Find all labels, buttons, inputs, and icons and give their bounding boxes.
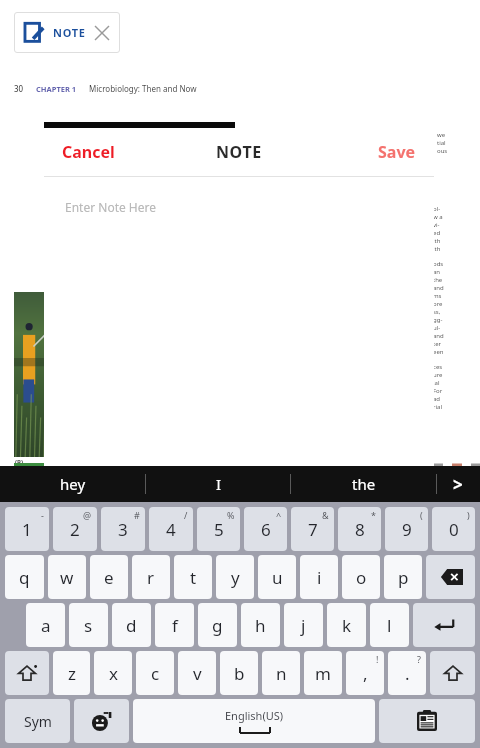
- staticText: -: [41, 509, 44, 521]
- button[interactable]: Clipboard: [379, 699, 475, 743]
- button[interactable]: English(US): [133, 699, 375, 743]
- staticText: w a: [433, 213, 443, 221]
- button[interactable]: Shift: [430, 651, 475, 695]
- button[interactable]: p: [384, 555, 422, 599]
- staticText: Enter Note Here: [65, 199, 157, 215]
- staticText: p: [398, 566, 409, 589]
- button[interactable]: Edit note: [23, 22, 45, 44]
- button[interactable]: z: [53, 651, 90, 695]
- button[interactable]: u: [258, 555, 296, 599]
- button[interactable]: h: [241, 603, 280, 647]
- button[interactable]: Save: [370, 135, 424, 169]
- staticText: CHAPTER 1: [36, 84, 77, 94]
- staticText: and: [433, 284, 444, 292]
- staticText: 3: [118, 518, 128, 541]
- staticText: 0: [449, 518, 459, 541]
- button[interactable]: j: [284, 603, 323, 647]
- button[interactable]: l: [370, 603, 409, 647]
- button[interactable]: 2: [53, 507, 97, 551]
- button[interactable]: t: [174, 555, 212, 599]
- button[interactable]: .: [388, 651, 426, 695]
- button[interactable]: 0: [432, 507, 475, 551]
- button[interactable]: q: [5, 555, 44, 599]
- staticText: k: [342, 614, 352, 637]
- button[interactable]: e: [90, 555, 128, 599]
- staticText: 6: [261, 518, 271, 541]
- staticText: Cancel: [62, 141, 115, 163]
- button[interactable]: k: [327, 603, 366, 647]
- button[interactable]: y: [216, 555, 254, 599]
- button[interactable]: a: [26, 603, 65, 647]
- staticText: x: [109, 662, 118, 685]
- button[interactable]: v: [178, 651, 216, 695]
- staticText: b: [234, 662, 245, 685]
- button[interactable]: g: [198, 603, 237, 647]
- button[interactable]: I: [146, 466, 291, 502]
- staticText: 2: [70, 518, 80, 541]
- staticText: ial: [433, 379, 440, 387]
- button[interactable]: Emoji and voice input: [74, 699, 129, 743]
- staticText: &: [322, 509, 329, 521]
- button[interactable]: r: [132, 555, 170, 599]
- button[interactable]: Shift: [5, 651, 49, 695]
- button[interactable]: Cancel: [54, 135, 123, 169]
- button[interactable]: s: [69, 603, 108, 647]
- staticText: *: [371, 509, 376, 521]
- button[interactable]: 4: [149, 507, 193, 551]
- button[interactable]: the: [291, 466, 436, 502]
- button[interactable]: ,: [346, 651, 384, 695]
- button[interactable]: i: [300, 555, 338, 599]
- staticText: a: [41, 614, 51, 637]
- button[interactable]: Enter: [413, 603, 475, 647]
- staticText: ul-: [433, 324, 441, 332]
- button[interactable]: 8: [338, 507, 381, 551]
- staticText: j: [301, 614, 306, 637]
- staticText: (B): [15, 458, 24, 466]
- staticText: we: [437, 131, 446, 139]
- button[interactable]: 3: [101, 507, 145, 551]
- button[interactable]: n: [262, 651, 300, 695]
- button[interactable]: More suggestions: [436, 466, 480, 502]
- button[interactable]: m: [304, 651, 342, 695]
- button[interactable]: hey: [0, 466, 146, 502]
- staticText: Sym: [24, 712, 52, 731]
- staticText: s: [84, 614, 93, 637]
- staticText: e: [104, 566, 114, 589]
- staticText: y: [231, 566, 240, 589]
- staticText: ad: [433, 395, 441, 403]
- staticText: 4: [166, 518, 176, 541]
- button[interactable]: 7: [291, 507, 334, 551]
- staticText: een: [433, 348, 444, 356]
- button[interactable]: d: [112, 603, 151, 647]
- staticText: ith: [433, 245, 441, 253]
- button[interactable]: 1: [5, 507, 49, 551]
- staticText: 9: [402, 518, 412, 541]
- staticText: !: [376, 653, 379, 665]
- staticText: ore: [433, 300, 443, 308]
- button[interactable]: c: [136, 651, 174, 695]
- staticText: (: [420, 509, 423, 521]
- staticText: I: [216, 474, 222, 494]
- staticText: t: [190, 566, 197, 589]
- staticText: w: [60, 566, 74, 589]
- staticText: hey: [60, 474, 86, 494]
- staticText: i: [317, 566, 322, 589]
- button[interactable]: x: [94, 651, 132, 695]
- button[interactable]: f: [155, 603, 194, 647]
- staticText: 1: [22, 518, 32, 541]
- button[interactable]: Sym: [5, 699, 70, 743]
- staticText: rial: [433, 403, 442, 411]
- button[interactable]: 5: [197, 507, 240, 551]
- button[interactable]: Close note: [93, 24, 111, 42]
- button[interactable]: 9: [385, 507, 428, 551]
- staticText: ?: [417, 653, 421, 665]
- staticText: ces: [433, 363, 443, 371]
- button[interactable]: o: [342, 555, 380, 599]
- button[interactable]: 6: [244, 507, 287, 551]
- button[interactable]: b: [220, 651, 258, 695]
- button[interactable]: Backspace: [426, 555, 475, 599]
- staticText: gg-: [433, 316, 443, 324]
- button[interactable]: w: [48, 555, 86, 599]
